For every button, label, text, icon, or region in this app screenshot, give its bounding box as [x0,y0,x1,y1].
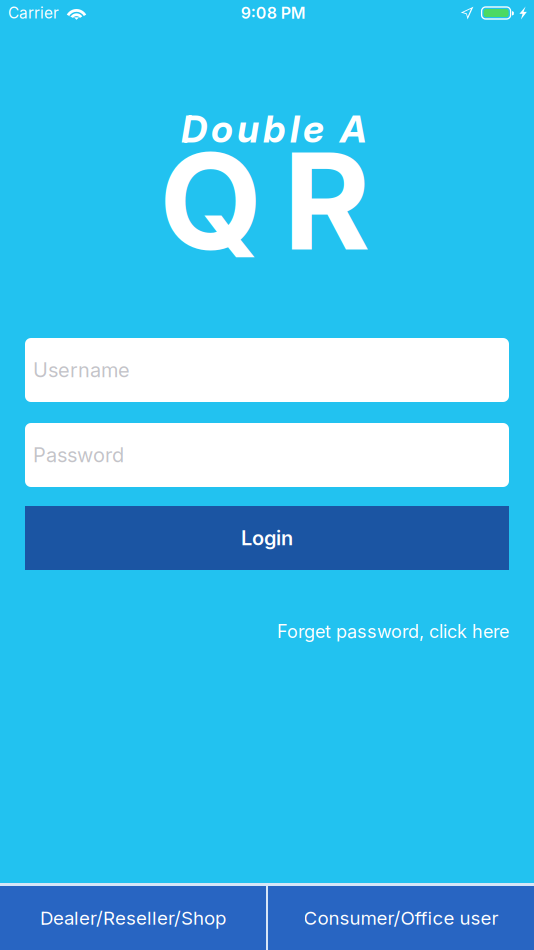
staticText: 9:08 PM [241,3,306,23]
staticText: Double A [181,106,367,152]
button[interactable]: Dealer/Reseller/Shop [0,886,266,950]
staticText: Password [33,443,124,467]
staticText: Forget password, click here [277,621,509,642]
button[interactable]: Login [25,506,509,570]
staticText: Login [241,526,293,550]
staticText: Consumer/Office user [303,907,498,929]
button[interactable]: Forget password, click here [0,621,534,642]
staticText: Username [33,358,130,382]
button[interactable]: Consumer/Office user [268,886,534,950]
staticText: QR [159,120,371,282]
staticText: Carrier [8,4,59,22]
staticText: Dealer/Reseller/Shop [40,907,226,929]
